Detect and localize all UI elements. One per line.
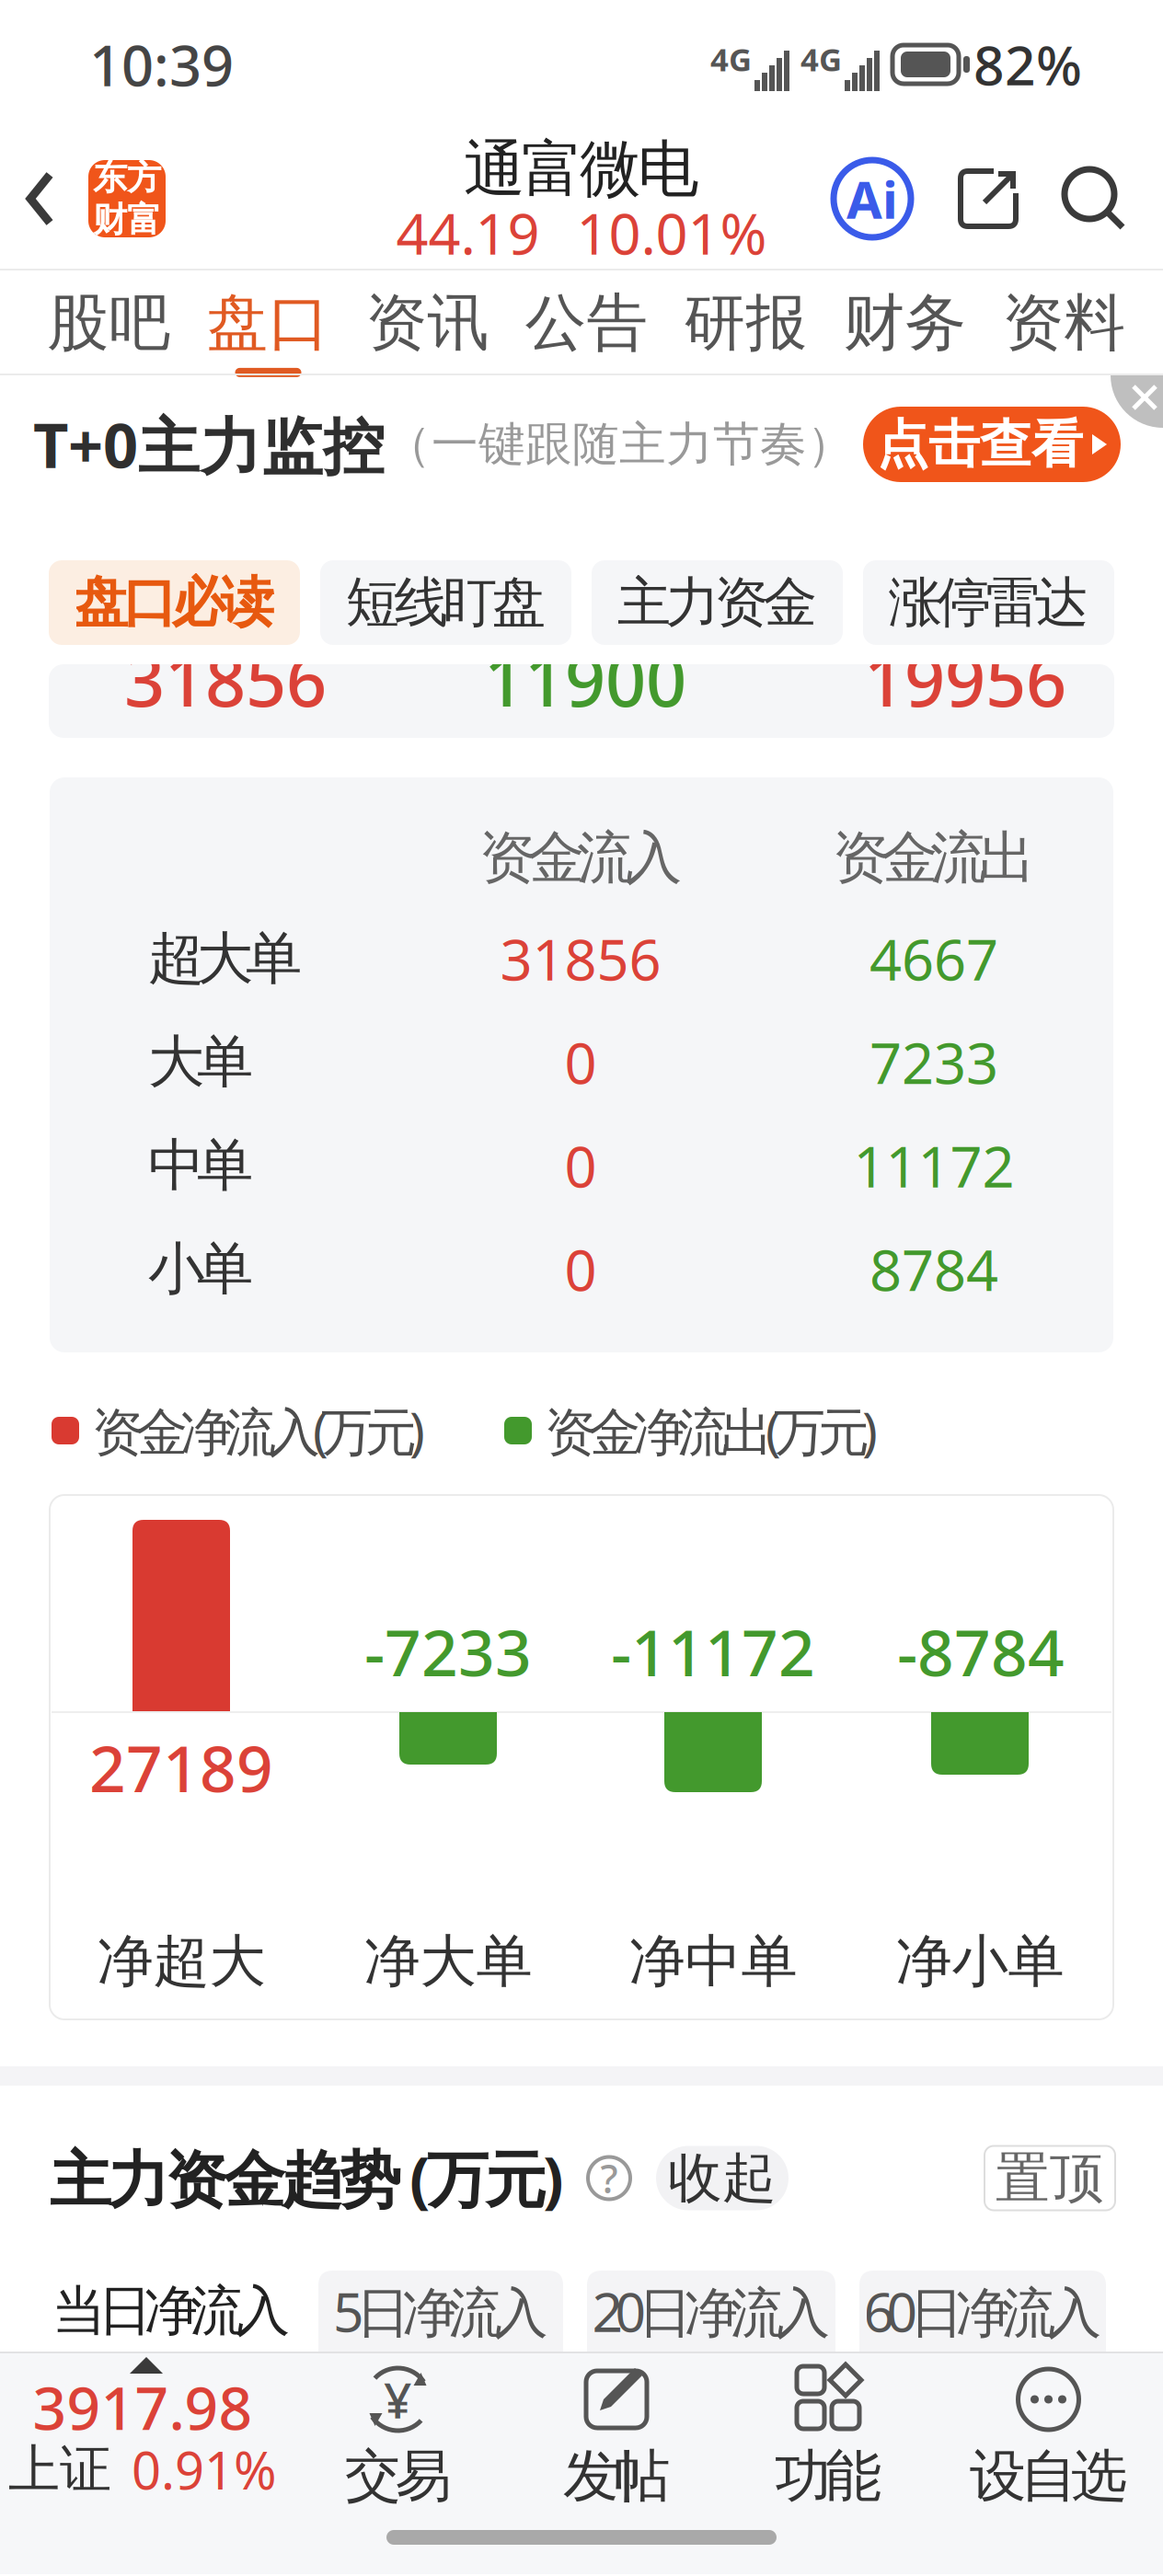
staticText: 0.91% xyxy=(132,2435,277,2504)
staticText: 通富微电 xyxy=(464,132,699,207)
staticText: 3917.98 xyxy=(33,2368,253,2446)
staticText: 资金净流出(万元) xyxy=(545,1396,878,1465)
button[interactable]: 点击查看 xyxy=(863,407,1163,482)
staticText: 盘口 xyxy=(207,285,330,361)
button[interactable]: 收起 xyxy=(630,2146,789,2210)
button[interactable]: 主力资金 xyxy=(592,560,843,645)
staticText: 净小单 xyxy=(896,1927,1064,1996)
button[interactable]: 60日净流入 xyxy=(859,2271,1106,2352)
staticText: 8784 xyxy=(869,1232,998,1306)
staticText: 82% xyxy=(973,29,1082,100)
staticText: -11172 xyxy=(611,1609,815,1694)
staticText: 60日净流入 xyxy=(864,2275,1102,2347)
staticText: 收起 xyxy=(668,2145,777,2211)
staticText: 4667 xyxy=(869,921,998,996)
button[interactable]: 研报 xyxy=(666,270,825,377)
staticText: 财务 xyxy=(843,285,967,361)
staticText: 31856 xyxy=(500,921,661,996)
staticText: 0 xyxy=(564,1232,597,1306)
staticText: -7233 xyxy=(364,1609,532,1694)
button[interactable]: 股吧 xyxy=(29,270,189,377)
staticText: 4G xyxy=(800,38,842,80)
button[interactable]: 短线盯盘 xyxy=(320,560,571,645)
button[interactable]: 资讯 xyxy=(348,270,507,377)
button[interactable]: 功能 xyxy=(722,2352,934,2511)
staticText: 短线盯盘 xyxy=(345,569,546,636)
button[interactable]: Ai xyxy=(834,160,911,237)
button[interactable]: 3917.98 xyxy=(0,2352,285,2515)
staticText: 31856 xyxy=(124,632,327,726)
staticText: ? xyxy=(600,2152,618,2204)
button[interactable]: 涨停雷达 xyxy=(863,560,1114,645)
staticText: 功能 xyxy=(775,2442,881,2511)
button[interactable]: 公告 xyxy=(507,270,666,377)
staticText: 资金流出 xyxy=(833,823,1035,893)
staticText: 盘口必读 xyxy=(74,569,275,636)
staticText: 交易 xyxy=(345,2442,451,2511)
staticText: 财富 xyxy=(93,199,161,241)
button[interactable]: 盘口必读 xyxy=(49,560,300,645)
staticText: 超大单 xyxy=(148,924,302,993)
staticText: （一键跟随主力节奏） xyxy=(385,416,854,473)
button[interactable] xyxy=(911,167,1019,230)
button[interactable] xyxy=(1110,375,1163,429)
staticText: 置顶 xyxy=(996,2145,1104,2211)
staticText: 5日净流入 xyxy=(333,2275,548,2347)
staticText: 研报 xyxy=(684,285,807,361)
staticText: 当日净流入 xyxy=(52,2278,290,2344)
staticText: 资料 xyxy=(1002,285,1126,361)
button[interactable]: 盘口 xyxy=(189,270,348,377)
button[interactable]: 5日净流入 xyxy=(318,2271,563,2352)
staticText: 11172 xyxy=(853,1128,1014,1203)
staticText: 发帖 xyxy=(563,2442,670,2511)
button[interactable] xyxy=(1019,167,1163,231)
staticText: 点击查看 xyxy=(877,413,1083,476)
button[interactable]: 发帖 xyxy=(511,2352,722,2511)
staticText: -8784 xyxy=(897,1609,1065,1694)
staticText: 中单 xyxy=(148,1131,253,1200)
staticText: 0 xyxy=(564,1025,597,1099)
staticText: 大单 xyxy=(148,1027,253,1097)
staticText: 4G xyxy=(710,38,752,80)
staticText: 20日净流入 xyxy=(592,2275,830,2347)
staticText: 小单 xyxy=(148,1234,253,1304)
staticText: 19956 xyxy=(864,632,1066,726)
button[interactable] xyxy=(0,174,53,224)
staticText: 资讯 xyxy=(366,285,489,361)
button[interactable]: 当日净流入 xyxy=(48,2271,294,2352)
staticText: 主力资金趋势 (万元) xyxy=(50,2137,564,2219)
staticText: 10.01% xyxy=(576,195,767,270)
staticText: 27189 xyxy=(89,1725,273,1810)
staticText: Ai xyxy=(846,164,898,233)
button[interactable]: 资料 xyxy=(985,270,1144,377)
staticText: T+0主力监控 xyxy=(33,404,385,485)
staticText: ¥ xyxy=(384,2367,412,2432)
staticText: 东方 xyxy=(93,156,161,199)
button[interactable]: 东方 xyxy=(53,160,166,237)
staticText: 44.19 xyxy=(396,195,540,270)
staticText: 涨停雷达 xyxy=(888,569,1089,636)
staticText: 上证 xyxy=(8,2438,111,2501)
staticText: 资金净流入(万元) xyxy=(92,1396,425,1465)
staticText: 股吧 xyxy=(47,285,171,361)
staticText: 设自选 xyxy=(970,2442,1127,2511)
staticText: 7233 xyxy=(869,1025,998,1099)
staticText: 11900 xyxy=(484,632,686,726)
staticText: 0 xyxy=(564,1128,597,1203)
staticText: 资金流入 xyxy=(479,823,682,893)
staticText: 净中单 xyxy=(629,1927,797,1996)
staticText: 10:39 xyxy=(89,27,234,102)
button[interactable]: ¥ xyxy=(285,2352,511,2511)
staticText: 净大单 xyxy=(364,1927,532,1996)
staticText: 净超大 xyxy=(97,1927,265,1996)
button[interactable]: 财务 xyxy=(825,270,985,377)
staticText: 公告 xyxy=(525,285,648,361)
button[interactable]: 20日净流入 xyxy=(587,2271,835,2352)
staticText: 主力资金 xyxy=(617,569,818,636)
button[interactable]: 置顶 xyxy=(985,2146,1163,2210)
button[interactable]: 设自选 xyxy=(934,2352,1163,2511)
